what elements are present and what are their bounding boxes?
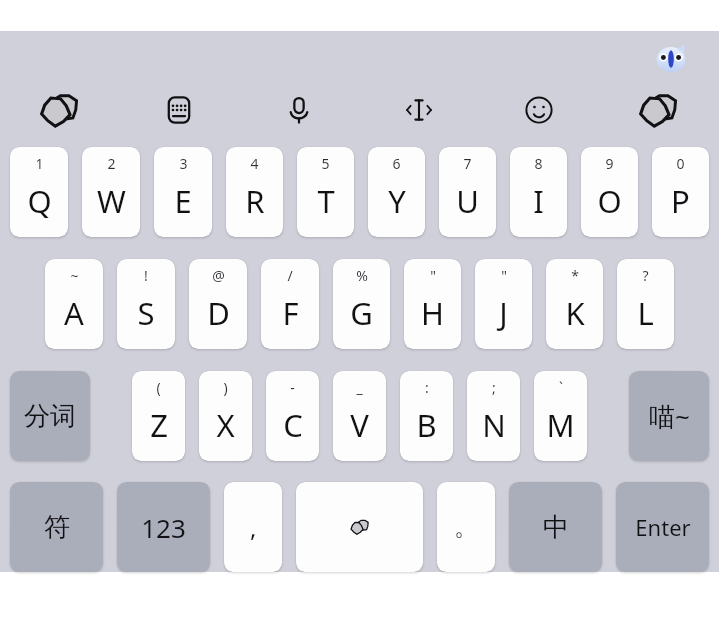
- staticText: 7: [463, 154, 472, 173]
- staticText: B: [416, 404, 437, 446]
- staticText: @: [212, 266, 225, 285]
- staticText: 分词: [24, 400, 76, 433]
- button[interactable]: 。: [437, 482, 495, 572]
- button[interactable]: Voice input: [239, 86, 359, 134]
- staticText: G: [350, 292, 373, 334]
- staticText: Z: [150, 404, 168, 446]
- button[interactable]: 5: [297, 147, 354, 237]
- staticText: U: [456, 180, 479, 222]
- button[interactable]: /: [261, 259, 319, 349]
- button[interactable]: 123: [117, 482, 210, 572]
- button[interactable]: `: [534, 371, 587, 461]
- button[interactable]: 3: [154, 147, 212, 237]
- staticText: V: [350, 404, 369, 446]
- staticText: 符: [44, 511, 70, 544]
- staticText: !: [144, 266, 148, 285]
- button[interactable]: @: [189, 259, 247, 349]
- staticText: ~: [70, 266, 79, 285]
- button[interactable]: Space: [296, 482, 423, 572]
- button[interactable]: -: [266, 371, 319, 461]
- staticText: `: [559, 378, 563, 397]
- staticText: 123: [141, 510, 186, 545]
- staticText: L: [637, 292, 654, 334]
- staticText: N: [482, 404, 506, 446]
- button[interactable]: Stickers: [0, 86, 119, 134]
- button[interactable]: ": [475, 259, 532, 349]
- button[interactable]: Theme: [599, 86, 719, 134]
- staticText: Y: [388, 180, 406, 222]
- button[interactable]: 1: [10, 147, 68, 237]
- staticText: X: [216, 404, 235, 446]
- staticText: -: [290, 378, 295, 397]
- staticText: M: [546, 404, 575, 446]
- button[interactable]: 6: [368, 147, 425, 237]
- button[interactable]: ,: [224, 482, 282, 572]
- staticText: 喵~: [649, 398, 690, 434]
- staticText: K: [565, 292, 585, 334]
- button[interactable]: 0: [652, 147, 709, 237]
- button[interactable]: 2: [82, 147, 140, 237]
- staticText: 中: [543, 511, 569, 544]
- staticText: _: [356, 378, 363, 397]
- staticText: P: [671, 180, 690, 222]
- staticText: I: [533, 180, 544, 222]
- staticText: (: [156, 378, 161, 397]
- button[interactable]: (: [132, 371, 185, 461]
- staticText: F: [282, 292, 299, 334]
- button[interactable]: *: [546, 259, 603, 349]
- button[interactable]: Input method brand: [651, 39, 691, 79]
- staticText: O: [597, 180, 622, 222]
- staticText: S: [137, 292, 155, 334]
- staticText: J: [499, 292, 508, 334]
- staticText: %: [356, 266, 368, 285]
- button[interactable]: Enter: [616, 482, 709, 572]
- staticText: T: [317, 180, 335, 222]
- staticText: *: [571, 266, 579, 285]
- staticText: 2: [107, 154, 116, 173]
- button[interactable]: _: [333, 371, 386, 461]
- staticText: 0: [676, 154, 685, 173]
- staticText: ?: [642, 266, 649, 285]
- staticText: 6: [392, 154, 401, 173]
- button[interactable]: %: [333, 259, 390, 349]
- staticText: 1: [35, 154, 44, 173]
- staticText: ,: [250, 511, 257, 544]
- button[interactable]: 符: [10, 482, 103, 572]
- staticText: 8: [534, 154, 543, 173]
- staticText: :: [425, 378, 429, 397]
- button[interactable]: ~: [45, 259, 103, 349]
- staticText: Enter: [635, 512, 691, 542]
- staticText: E: [174, 180, 192, 222]
- button[interactable]: Emoji: [479, 86, 599, 134]
- staticText: Q: [27, 180, 52, 222]
- staticText: ": [430, 266, 436, 285]
- button[interactable]: 喵~: [629, 371, 709, 461]
- button[interactable]: 7: [439, 147, 496, 237]
- button[interactable]: Keyboard layout: [119, 86, 239, 134]
- button[interactable]: ;: [467, 371, 520, 461]
- staticText: 4: [250, 154, 259, 173]
- staticText: C: [283, 404, 303, 446]
- button[interactable]: ): [199, 371, 252, 461]
- button[interactable]: 8: [510, 147, 567, 237]
- button[interactable]: ?: [617, 259, 674, 349]
- staticText: 。: [454, 512, 478, 542]
- staticText: D: [207, 292, 230, 334]
- staticText: /: [287, 266, 293, 285]
- staticText: H: [421, 292, 444, 334]
- button[interactable]: !: [117, 259, 175, 349]
- staticText: 3: [179, 154, 188, 173]
- staticText: ": [501, 266, 507, 285]
- button[interactable]: ": [404, 259, 461, 349]
- staticText: W: [97, 180, 126, 222]
- staticText: ): [223, 378, 228, 397]
- button[interactable]: Move cursor: [359, 86, 479, 134]
- button[interactable]: 分词: [10, 371, 90, 461]
- button[interactable]: :: [400, 371, 453, 461]
- staticText: 9: [605, 154, 614, 173]
- staticText: ;: [492, 378, 496, 397]
- button[interactable]: 4: [226, 147, 283, 237]
- staticText: 5: [321, 154, 330, 173]
- button[interactable]: 中: [509, 482, 602, 572]
- button[interactable]: 9: [581, 147, 638, 237]
